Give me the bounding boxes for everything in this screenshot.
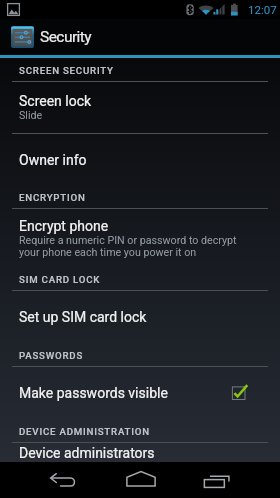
staticText: Encrypt phone bbox=[19, 218, 109, 234]
button[interactable]: Back bbox=[40, 465, 84, 495]
button[interactable]: Screen lock bbox=[0, 82, 280, 133]
button[interactable]: Recent apps bbox=[194, 465, 238, 495]
staticText: 12:07 bbox=[248, 3, 277, 16]
staticText: Slide bbox=[19, 109, 43, 122]
staticText: PASSWORDS bbox=[19, 350, 84, 361]
staticText: Make passwords visible bbox=[19, 385, 168, 401]
staticText: Device administrators bbox=[19, 445, 155, 461]
button[interactable]: Encrypt phone bbox=[0, 209, 280, 267]
button[interactable]: Device administrators bbox=[0, 443, 280, 462]
button[interactable]: Make passwords visible bbox=[0, 367, 280, 419]
staticText: Set up SIM card lock bbox=[19, 309, 147, 325]
staticText: ENCRYPTION bbox=[19, 192, 86, 203]
staticText: Security bbox=[40, 28, 92, 46]
button[interactable]: Set up SIM card lock bbox=[0, 291, 280, 343]
staticText: SIM CARD LOCK bbox=[19, 274, 101, 285]
button[interactable]: Owner info bbox=[0, 134, 280, 185]
staticText: DEVICE ADMINISTRATION bbox=[19, 426, 150, 437]
staticText: Owner info bbox=[19, 152, 87, 168]
button[interactable]: Home bbox=[119, 464, 163, 494]
staticText: SCREEN SECURITY bbox=[19, 65, 114, 76]
staticText: Screen lock bbox=[19, 93, 92, 109]
staticText: Require a numeric PIN or password to dec… bbox=[19, 234, 237, 258]
button[interactable]: Security bbox=[0, 19, 280, 55]
